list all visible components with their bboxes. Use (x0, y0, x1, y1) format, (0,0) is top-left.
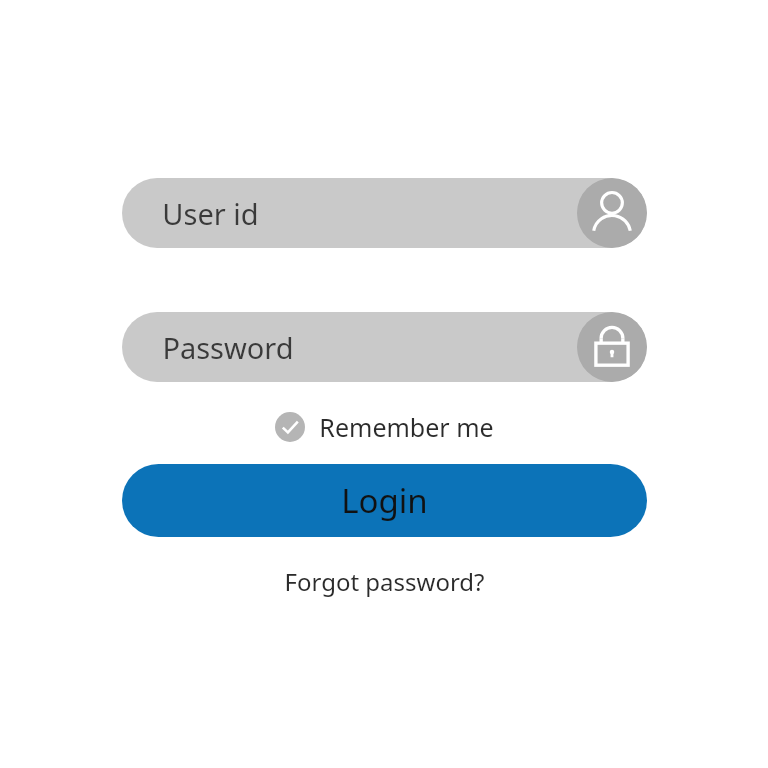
staticText: Remember me (319, 410, 494, 444)
other: User account (577, 178, 647, 248)
staticText: User id (162, 194, 259, 233)
other: Password lock (577, 312, 647, 382)
button[interactable]: Forgot password? (276, 561, 493, 602)
button[interactable]: User id (122, 178, 647, 248)
staticText: Password (162, 328, 294, 367)
button[interactable]: Login (122, 464, 647, 537)
staticText: Login (341, 478, 428, 523)
staticText: Forgot password? (284, 565, 485, 598)
button[interactable]: Remember me (271, 408, 498, 446)
button[interactable]: Password (122, 312, 647, 382)
